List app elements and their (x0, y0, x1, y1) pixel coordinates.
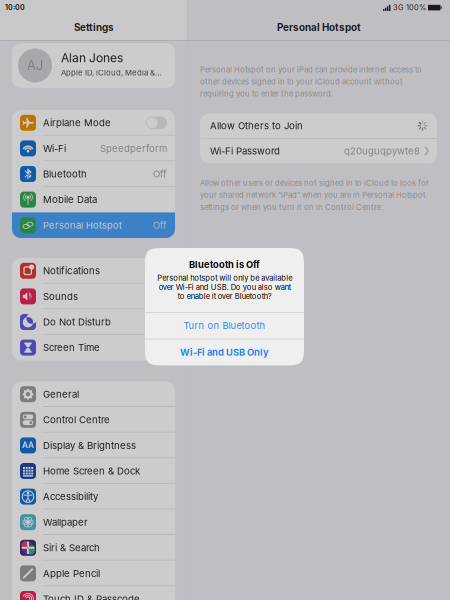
staticText: Turn on Bluetooth (183, 320, 265, 331)
button[interactable]: AA (12, 433, 175, 458)
button[interactable]: Airplane Mode (12, 110, 175, 136)
button[interactable]: Siri & Search (12, 535, 175, 561)
staticText: Off (153, 168, 167, 180)
button[interactable]: Apple Pencil (12, 561, 175, 586)
button[interactable]: AJ (12, 43, 175, 88)
staticText: Notifications (43, 265, 100, 277)
button[interactable]: Wi-Fi and USB Only (145, 339, 304, 365)
staticText: Home Screen & Dock (43, 465, 140, 477)
staticText: Settings (74, 21, 114, 33)
button[interactable]: Turn on Bluetooth (145, 313, 304, 339)
staticText: Personal Hotspot (277, 21, 361, 33)
staticText: Sounds (43, 291, 78, 302)
staticText: 3G (393, 3, 404, 12)
staticText: AA (22, 440, 34, 450)
staticText: Control Centre (43, 414, 110, 426)
button[interactable]: Touch ID & Passcode (12, 586, 175, 600)
staticText: Mobile Data (43, 194, 97, 205)
button[interactable]: Mobile Data (12, 187, 175, 212)
staticText: Wi-Fi Password (210, 145, 280, 157)
staticText: Wi-Fi (43, 143, 66, 154)
staticText: Alan Jones (61, 51, 123, 65)
staticText: Accessibility (43, 491, 98, 502)
staticText: Siri & Search (43, 542, 100, 554)
staticText: Personal Hotspot on your iPad can provid… (200, 65, 422, 98)
button[interactable]: Notifications (12, 258, 175, 284)
staticText: Do Not Disturb (43, 316, 111, 328)
button[interactable]: Accessibility (12, 484, 175, 509)
staticText: 100% (406, 3, 426, 12)
button[interactable]: Bluetooth (12, 161, 175, 187)
button[interactable]: Personal Hotspot (12, 212, 175, 238)
staticText: Personal Hotspot (43, 219, 122, 231)
staticText: Apple Pencil (43, 568, 100, 579)
staticText: Off (153, 219, 167, 231)
button[interactable]: Sounds (12, 284, 175, 309)
staticText: Bluetooth is Off (189, 259, 260, 270)
button[interactable]: Wi-Fi Password (200, 139, 437, 163)
staticText: Touch ID & Passcode (43, 593, 140, 600)
staticText: General (43, 388, 79, 400)
staticText: Wallpaper (43, 516, 88, 528)
staticText: Apple ID, iCloud, Media &… (61, 68, 162, 77)
button[interactable]: Home Screen & Dock (12, 458, 175, 484)
staticText: Wi-Fi and USB Only (180, 347, 269, 358)
staticText: Allow Others to Join (210, 120, 303, 131)
button[interactable]: Control Centre (12, 407, 175, 433)
button[interactable]: Wallpaper (12, 509, 175, 535)
staticText: AJ (27, 58, 43, 73)
staticText: q20uguqpywte8 (344, 145, 420, 157)
staticText: 10:00 (5, 3, 25, 12)
staticText: Bluetooth (43, 168, 87, 180)
staticText: Airplane Mode (43, 117, 111, 129)
staticText: Display & Brightness (43, 440, 136, 451)
staticText: Personal hotspot will only be available … (157, 273, 292, 301)
button[interactable]: General (12, 381, 175, 407)
staticText: Allow other users or devices not signed … (200, 178, 429, 212)
button[interactable]: Allow Others to Join (200, 113, 437, 138)
button[interactable]: Screen Time (12, 335, 175, 360)
staticText: Screen Time (43, 342, 100, 353)
staticText: Speedperform (100, 143, 167, 154)
button[interactable]: Wi-Fi (12, 136, 175, 161)
button[interactable]: Do Not Disturb (12, 309, 175, 335)
